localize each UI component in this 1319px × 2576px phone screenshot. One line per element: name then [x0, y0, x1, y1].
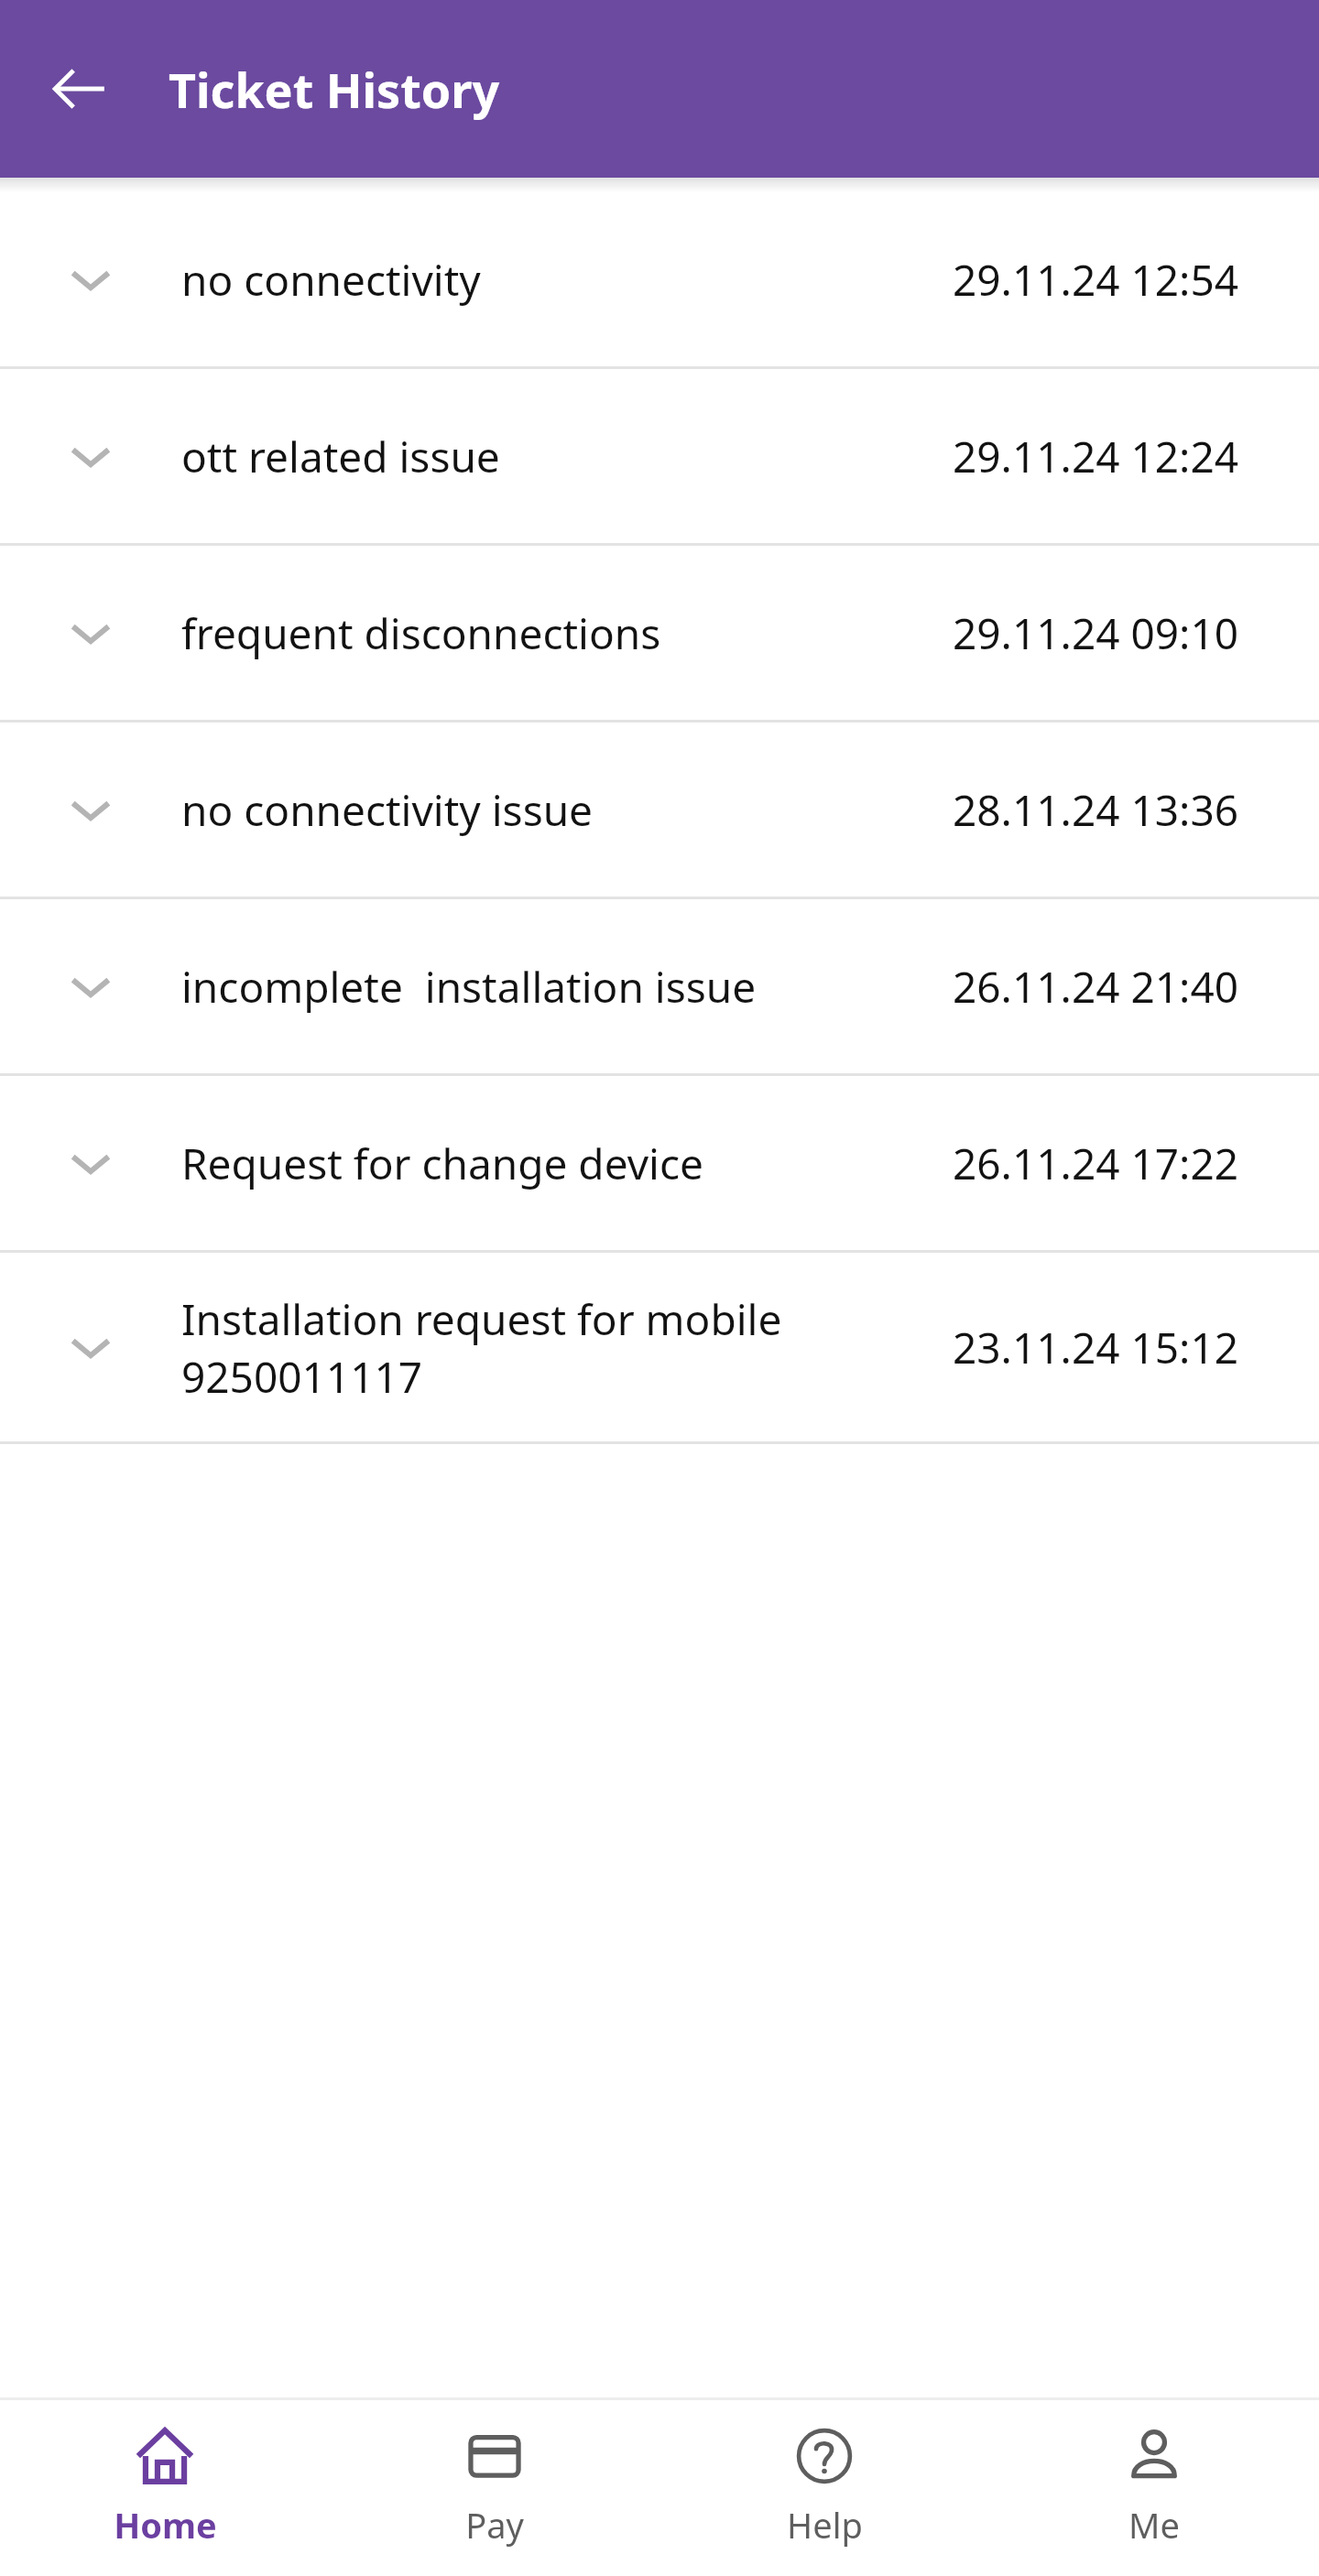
- button[interactable]: Pay: [330, 2400, 659, 2576]
- staticText: Installation request for mobile 92500111…: [181, 1290, 782, 1405]
- button[interactable]: Request for change device: [0, 1076, 1319, 1250]
- button[interactable]: Back: [27, 38, 130, 140]
- staticText: 26.11.24 17:22: [953, 1135, 1239, 1192]
- staticText: Me: [1128, 2501, 1180, 2549]
- staticText: 26.11.24 21:40: [953, 958, 1239, 1016]
- staticText: Request for change device: [181, 1135, 703, 1192]
- staticText: no connectivity issue: [181, 781, 594, 839]
- staticText: no connectivity: [181, 251, 481, 309]
- button[interactable]: Home: [0, 2400, 330, 2576]
- staticText: Ticket History: [169, 57, 500, 122]
- staticText: frequent disconnections: [181, 604, 661, 662]
- staticText: 28.11.24 13:36: [953, 781, 1239, 839]
- button[interactable]: no connectivity issue: [0, 723, 1319, 897]
- staticText: Pay: [465, 2501, 524, 2549]
- button[interactable]: frequent disconnections: [0, 546, 1319, 720]
- button[interactable]: ott related issue: [0, 369, 1319, 543]
- button[interactable]: incomplete installation issue: [0, 899, 1319, 1073]
- button[interactable]: Installation request for mobile 92500111…: [0, 1253, 1319, 1441]
- staticText: 29.11.24 09:10: [953, 604, 1239, 662]
- staticText: incomplete installation issue: [181, 958, 757, 1016]
- staticText: 29.11.24 12:54: [953, 251, 1239, 309]
- staticText: Help: [787, 2501, 863, 2549]
- staticText: Home: [114, 2501, 217, 2549]
- staticText: 29.11.24 12:24: [953, 428, 1239, 485]
- button[interactable]: Me: [989, 2400, 1319, 2576]
- button[interactable]: no connectivity: [0, 192, 1319, 366]
- button[interactable]: Help: [659, 2400, 989, 2576]
- staticText: 23.11.24 15:12: [953, 1319, 1239, 1376]
- staticText: ott related issue: [181, 428, 500, 485]
